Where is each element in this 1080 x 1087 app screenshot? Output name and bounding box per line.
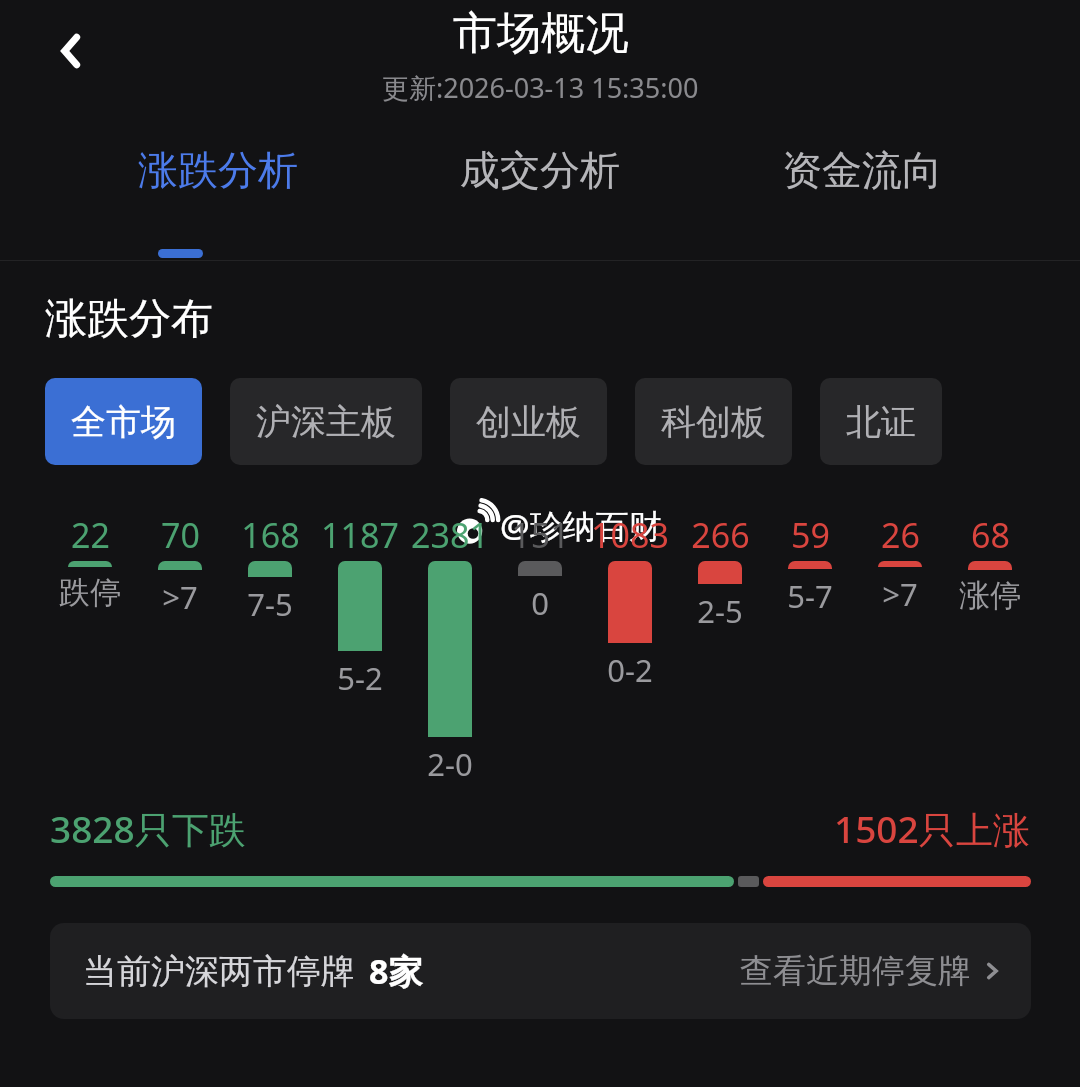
staticText: 2381 (411, 512, 489, 558)
staticText: 跌停 (59, 573, 121, 612)
staticText: >7 (162, 576, 198, 618)
staticText: 5-7 (787, 575, 833, 617)
button[interactable]: 创业板 (450, 378, 607, 465)
staticText: 成交分析 (460, 145, 620, 195)
staticText: 沪深主板 (256, 400, 396, 444)
staticText: 当前沪深两市停牌 (83, 950, 355, 993)
staticText: 3828只下跌 (50, 803, 246, 854)
staticText: 151 (511, 512, 570, 558)
staticText: 59 (791, 512, 830, 558)
staticText: 0 (531, 582, 549, 624)
staticText: 科创板 (661, 400, 766, 444)
staticText: 7-5 (247, 583, 293, 625)
button[interactable]: 全市场 (45, 378, 202, 465)
button[interactable]: 科创板 (635, 378, 792, 465)
staticText: >7 (882, 573, 918, 615)
staticText: 266 (691, 512, 750, 558)
staticText: 8家 (369, 948, 423, 994)
staticText: 查看近期停复牌 (740, 950, 971, 992)
button[interactable]: 当前沪深两市停牌 (50, 923, 1031, 1019)
staticText: 1083 (591, 512, 669, 558)
button[interactable]: Back (30, 8, 116, 94)
staticText: 5-2 (337, 657, 383, 699)
staticText: 全市场 (71, 400, 176, 444)
staticText: 涨跌分布 (45, 293, 213, 346)
button[interactable]: 北证 (820, 378, 942, 465)
staticText: 涨停 (959, 576, 1021, 615)
staticText: 更新:2026-03-13 15:35:00 (382, 69, 699, 106)
staticText: 1502只上涨 (834, 803, 1030, 854)
staticText: 涨跌分析 (138, 145, 298, 195)
staticText: 0-2 (607, 649, 653, 691)
staticText: 2-0 (427, 743, 473, 785)
staticText: 2-5 (697, 590, 743, 632)
staticText: 北证 (846, 400, 916, 444)
staticText: 1187 (321, 512, 399, 558)
staticText: 68 (971, 512, 1010, 558)
staticText: @珍纳百财 (500, 503, 662, 548)
button[interactable]: 资金流向 (758, 131, 966, 209)
staticText: 市场概况 (453, 6, 629, 61)
staticText: 26 (881, 512, 920, 558)
staticText: 资金流向 (782, 145, 942, 195)
staticText: 70 (161, 512, 200, 558)
staticText: 168 (241, 512, 300, 558)
staticText: 22 (71, 512, 110, 558)
button[interactable]: 涨跌分析 (114, 131, 322, 209)
staticText: 创业板 (476, 400, 581, 444)
button[interactable]: 沪深主板 (230, 378, 422, 465)
button[interactable]: 成交分析 (436, 131, 644, 209)
